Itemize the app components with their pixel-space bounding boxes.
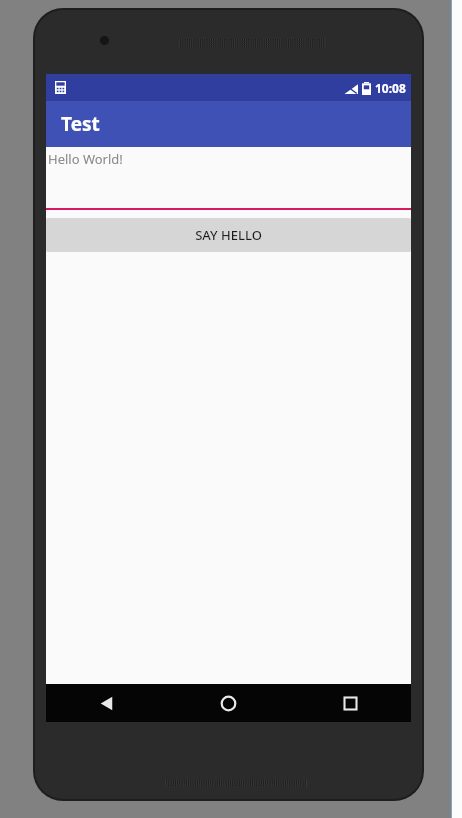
staticText: 10:08 (375, 80, 406, 96)
button[interactable] (46, 194, 411, 210)
button[interactable]: Back (46, 684, 167, 722)
button[interactable]: SAY HELLO (46, 218, 411, 252)
button[interactable]: Recent apps (289, 684, 411, 722)
staticText: Test (61, 111, 100, 137)
staticText: SAY HELLO (195, 226, 262, 244)
staticText: Hello World! (48, 150, 123, 168)
button[interactable]: Home (167, 684, 289, 722)
